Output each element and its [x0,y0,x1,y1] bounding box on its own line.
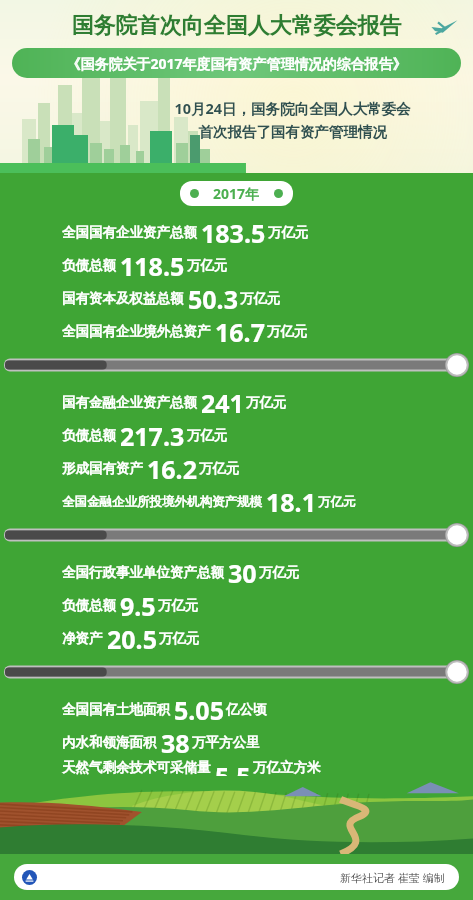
staticText: 118.5 [120,249,185,282]
staticText: 天然气剩余技术可采储量 [62,759,211,776]
other: Xinhua logo [22,870,37,885]
staticText: 20.5 [107,622,157,655]
staticText: 首次报告了国有资产管理情况 [120,123,465,141]
staticText: 《国务院关于2017年度国有资产管理情况的综合报告》 [12,54,461,73]
staticText: 217.3 [120,419,185,452]
button[interactable]: 形成国有资产 [62,452,463,485]
staticText: 全国国有土地面积 [62,701,170,718]
button[interactable]: 全国国有企业境外总资产 [62,315,463,348]
staticText: 万亿元 [246,394,287,411]
button[interactable]: 全国国有企业资产总额 [62,216,463,249]
staticText: 负债总额 [62,597,116,614]
staticText: 全国国有企业境外总资产 [62,323,211,340]
button[interactable]: 国有资本及权益总额 [62,282,463,315]
staticText: 9.5 [120,589,156,622]
staticText: 2017年 [213,184,260,203]
staticText: 万亿元 [240,290,281,307]
staticText: 10月24日，国务院向全国人大常委会 [120,98,465,118]
staticText: 30 [228,556,257,589]
button[interactable]: Xinhua logo [14,864,459,890]
staticText: 国有资本及权益总额 [62,290,184,307]
staticText: 万亿元 [268,224,309,241]
staticText: 万亿元 [187,427,228,444]
staticText: 亿公顷 [226,701,267,718]
button[interactable]: 《国务院关于2017年度国有资产管理情况的综合报告》 [12,48,461,78]
staticText: 新华社记者 崔莹 编制 [340,870,445,885]
button[interactable]: 2017年 [180,181,293,206]
staticText: 万亿元 [259,564,300,581]
staticText: 5.05 [174,693,224,726]
button[interactable]: 内水和领海面积 [62,726,463,759]
staticText: 全国国有企业资产总额 [62,224,197,241]
staticText: 万亿元 [187,257,228,274]
staticText: 净资产 [62,630,103,647]
button[interactable]: 负债总额 [62,589,463,622]
staticText: 18.1 [266,485,316,518]
staticText: 16.2 [147,452,197,485]
staticText: 万平方公里 [192,734,260,751]
staticText: 万亿元 [318,494,356,510]
staticText: 万亿元 [158,597,199,614]
staticText: 形成国有资产 [62,460,143,477]
staticText: 万亿元 [159,630,200,647]
button[interactable]: 负债总额 [62,249,463,282]
button[interactable]: 净资产 [62,622,463,655]
staticText: 万亿元 [267,323,308,340]
staticText: 万亿元 [199,460,240,477]
staticText: 负债总额 [62,427,116,444]
staticText: 负债总额 [62,257,116,274]
staticText: 38 [161,726,190,759]
staticText: 内水和领海面积 [62,734,157,751]
staticText: 183.5 [201,216,266,249]
staticText: 5.5 [215,759,251,776]
staticText: 万亿立方米 [253,759,321,776]
staticText: 国务院首次向全国人大常委会报告 [0,12,473,40]
staticText: 国有金融企业资产总额 [62,394,197,411]
staticText: 全国金融企业所投境外机构资产规模 [62,494,262,510]
staticText: 241 [201,386,244,419]
button[interactable]: 国有金融企业资产总额 [62,386,463,419]
button[interactable]: 全国行政事业单位资产总额 [62,556,463,589]
button[interactable]: 全国国有土地面积 [62,693,463,726]
button[interactable]: 天然气剩余技术可采储量 [62,759,463,776]
staticText: 全国行政事业单位资产总额 [62,564,224,581]
button[interactable]: 全国金融企业所投境外机构资产规模 [62,485,463,518]
staticText: 16.7 [215,315,265,348]
other: Airplane [429,17,459,35]
button[interactable]: 负债总额 [62,419,463,452]
staticText: 50.3 [188,282,238,315]
